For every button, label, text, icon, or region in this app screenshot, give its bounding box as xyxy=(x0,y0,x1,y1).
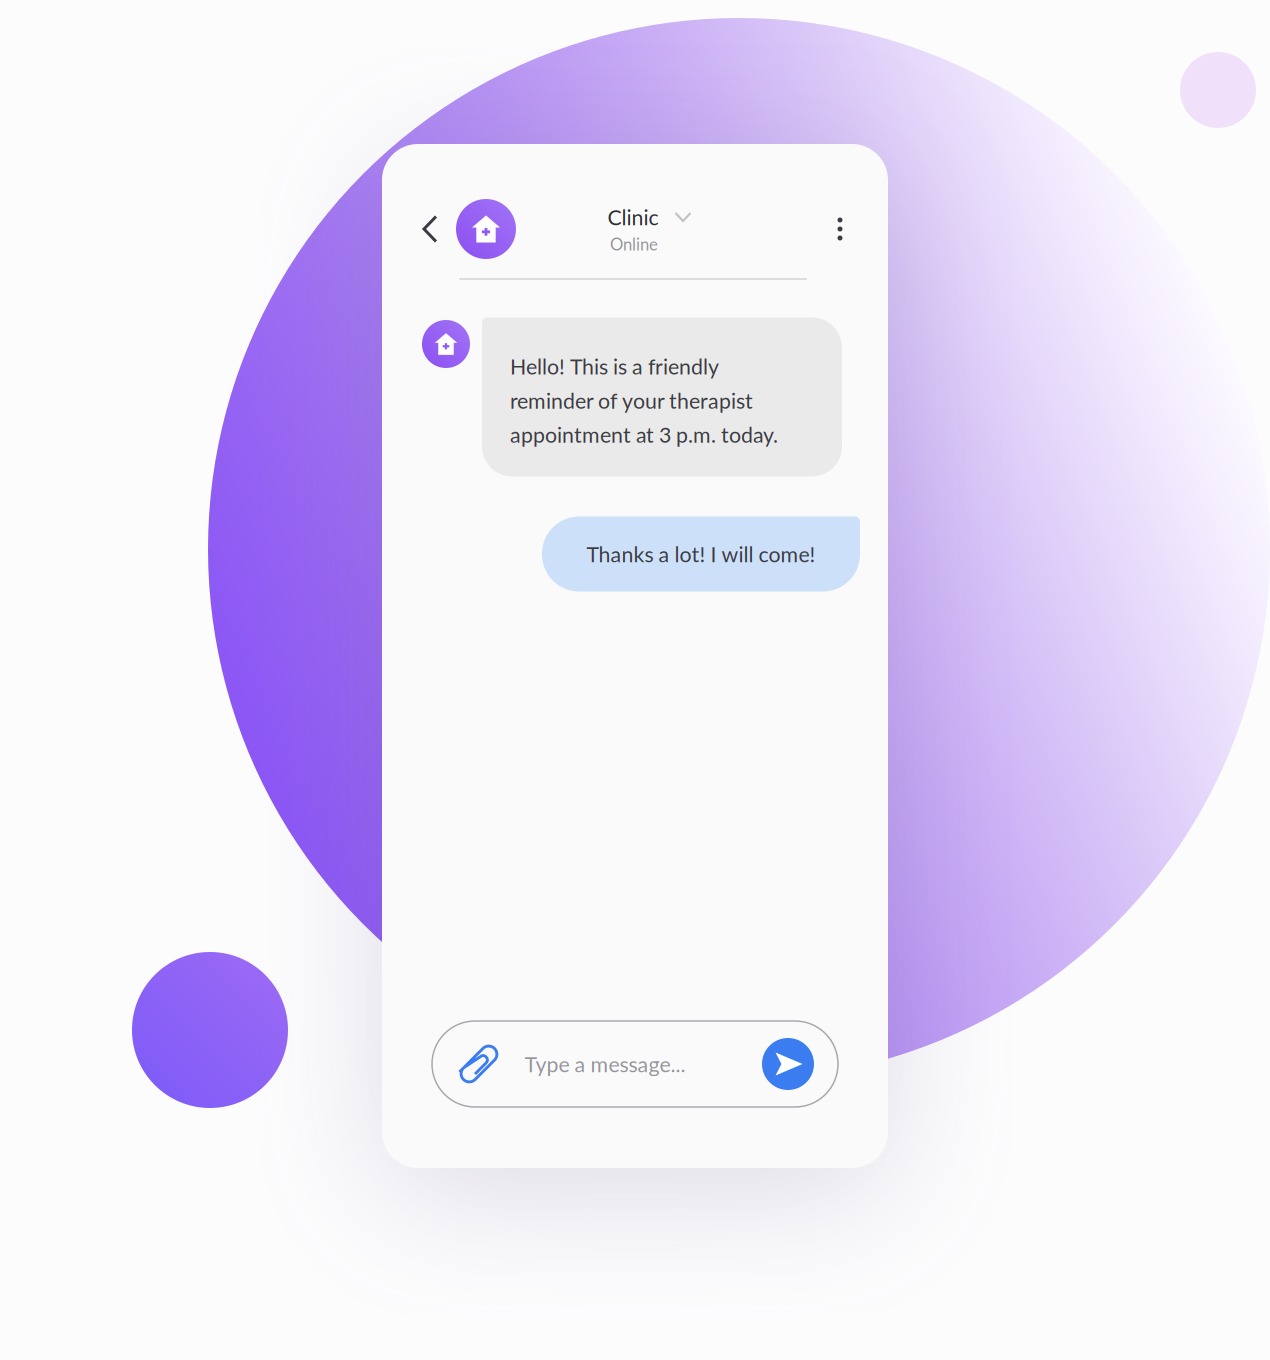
staticText: appointment at 3 p.m. today. xyxy=(510,422,778,447)
button[interactable]: Clinic xyxy=(543,195,743,265)
button[interactable]: Attach file xyxy=(453,1038,505,1090)
button[interactable]: Back xyxy=(407,206,453,252)
staticText: Hello! This is a friendly xyxy=(510,353,719,379)
staticText: Type a message... xyxy=(524,1051,685,1077)
button[interactable]: More options xyxy=(817,206,863,252)
button[interactable]: Send xyxy=(762,1038,814,1090)
staticText: Online xyxy=(610,234,658,254)
staticText: Thanks a lot! I will come! xyxy=(586,541,815,567)
staticText: reminder of your therapist xyxy=(510,388,753,413)
staticText: Clinic xyxy=(607,204,658,230)
